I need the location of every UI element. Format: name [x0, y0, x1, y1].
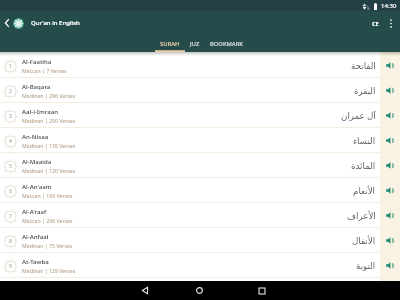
button[interactable]: JUZ — [185, 35, 205, 52]
button[interactable]: Play audio — [380, 228, 400, 253]
staticText: Medinan | 176 Verses — [22, 142, 76, 149]
button[interactable]: Back — [127, 281, 163, 300]
button[interactable]: 5 — [0, 153, 380, 178]
staticText: An-Nisaa — [22, 133, 49, 141]
staticText: 1 — [9, 63, 12, 70]
staticText: CE — [372, 20, 379, 27]
staticText: Aal-i-Imraan — [22, 108, 59, 116]
staticText: 5 — [9, 163, 12, 170]
button[interactable]: 4 — [0, 128, 380, 153]
button[interactable]: Play audio — [380, 103, 400, 128]
staticText: الأعراف — [347, 211, 376, 221]
button[interactable]: 7 — [0, 203, 380, 228]
button[interactable]: Back — [0, 11, 13, 35]
staticText: الأنفال — [352, 236, 376, 246]
staticText: 7 — [9, 213, 12, 220]
staticText: Medinan | 75 Verses — [22, 242, 73, 249]
button[interactable]: 2 — [0, 78, 380, 103]
staticText: Al-A'raaf — [22, 208, 47, 216]
button[interactable]: Home — [181, 281, 217, 300]
button[interactable]: Play audio — [380, 78, 400, 103]
staticText: Meccan | 7 Verses — [22, 67, 67, 74]
button[interactable]: 9 — [0, 253, 380, 278]
button[interactable]: Play audio — [380, 203, 400, 228]
staticText: Al-Faatiha — [22, 58, 52, 66]
staticText: 2 — [9, 88, 12, 95]
button[interactable]: Play audio — [380, 128, 400, 153]
button[interactable]: SURAH — [155, 35, 185, 52]
button[interactable]: Cast screen — [368, 11, 382, 35]
staticText: BOOKMARK — [210, 40, 243, 48]
button[interactable]: Recent apps — [244, 281, 280, 300]
staticText: آل عمران — [341, 110, 376, 122]
staticText: 4 — [9, 138, 12, 145]
staticText: Medinan | 200 Verses — [22, 117, 76, 124]
button[interactable]: Play audio — [380, 253, 400, 278]
staticText: التوبة — [356, 261, 376, 271]
button[interactable]: More options — [385, 11, 397, 35]
staticText: Al-Baqara — [22, 83, 51, 91]
staticText: 8 — [9, 238, 12, 245]
staticText: Medinan | 129 Verses — [22, 267, 76, 274]
button[interactable]: 6 — [0, 178, 380, 203]
staticText: SURAH — [160, 40, 180, 48]
button[interactable]: Play audio — [380, 178, 400, 203]
staticText: المائدة — [351, 161, 376, 171]
staticText: Medinan | 286 Verses — [22, 92, 76, 99]
staticText: Meccan | 206 Verses — [22, 217, 73, 224]
staticText: 9 — [9, 263, 12, 270]
staticText: Qur'an in English — [31, 19, 80, 27]
button[interactable]: BOOKMARK — [205, 35, 248, 52]
button[interactable]: Play audio — [380, 53, 400, 78]
staticText: 14:30 — [381, 2, 397, 10]
staticText: النساء — [353, 136, 376, 146]
staticText: 6 — [9, 188, 12, 195]
staticText: JUZ — [190, 40, 200, 48]
staticText: Al-Maaida — [22, 158, 52, 166]
button[interactable]: 3 — [0, 103, 380, 128]
staticText: الأنعام — [353, 186, 376, 196]
staticText: Meccan | 165 Verses — [22, 192, 73, 199]
staticText: At-Tawba — [22, 258, 49, 266]
staticText: البقرة — [354, 86, 376, 96]
staticText: Medinan | 120 Verses — [22, 167, 76, 174]
staticText: Al-Anfaal — [22, 233, 49, 241]
button[interactable]: Play audio — [380, 153, 400, 178]
staticText: Al-An'aam — [22, 183, 52, 191]
button[interactable]: 8 — [0, 228, 380, 253]
staticText: 3 — [9, 113, 12, 120]
staticText: الفاتحة — [351, 61, 376, 71]
button[interactable]: 1 — [0, 53, 380, 78]
